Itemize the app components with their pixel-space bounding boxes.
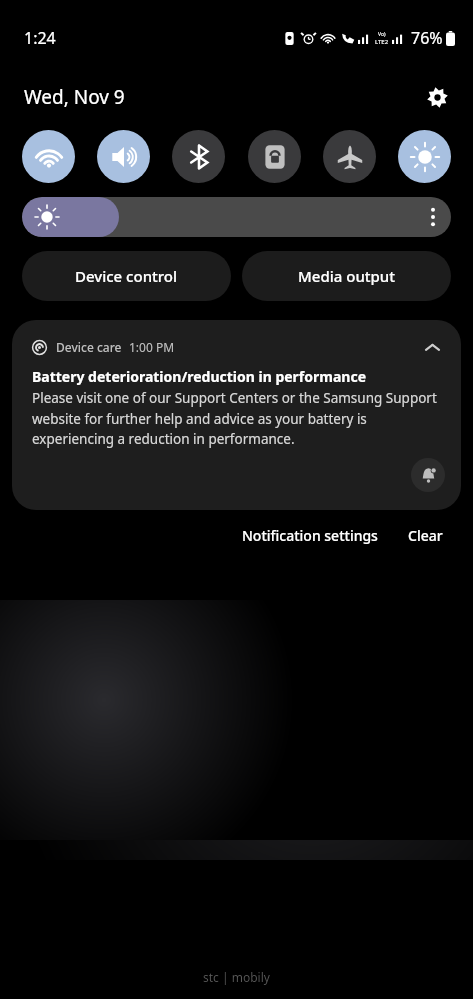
staticText: Clear bbox=[408, 526, 443, 545]
button[interactable]: Lock bbox=[248, 130, 301, 183]
staticText: Battery deterioration/reduction in perfo… bbox=[32, 367, 367, 386]
button[interactable]: Airplane mode bbox=[323, 130, 376, 183]
staticText: Media output bbox=[298, 266, 395, 286]
staticText: 76% bbox=[411, 27, 443, 49]
staticText: stc | mobily bbox=[203, 969, 270, 985]
button[interactable]: Bluetooth bbox=[172, 130, 225, 183]
staticText: LTE2 bbox=[375, 38, 389, 46]
button[interactable]: Brightness bbox=[398, 130, 451, 183]
button[interactable]: Mute notification bbox=[411, 458, 445, 492]
staticText: Device care bbox=[56, 339, 122, 355]
staticText: Device control bbox=[75, 266, 178, 286]
button[interactable]: Brightness bbox=[22, 197, 451, 237]
button[interactable]: Device control bbox=[22, 251, 231, 301]
staticText: Vo) bbox=[378, 31, 386, 38]
button[interactable]: Media output bbox=[242, 251, 451, 301]
button[interactable]: Sound bbox=[97, 130, 150, 183]
staticText: Wed, Nov 9 bbox=[24, 84, 125, 110]
button[interactable]: Settings bbox=[419, 79, 455, 115]
button[interactable]: Collapse bbox=[419, 334, 445, 360]
button[interactable]: Clear bbox=[402, 518, 449, 553]
button[interactable]: Wi-Fi bbox=[22, 130, 75, 183]
staticText: Notification settings bbox=[242, 526, 378, 545]
button[interactable]: Device care bbox=[12, 320, 461, 510]
staticText: 1:00 PM bbox=[129, 339, 175, 355]
staticText: Please visit one of our Support Centers … bbox=[32, 389, 445, 448]
button[interactable]: Notification settings bbox=[236, 518, 384, 553]
staticText: 1:24 bbox=[24, 27, 56, 49]
